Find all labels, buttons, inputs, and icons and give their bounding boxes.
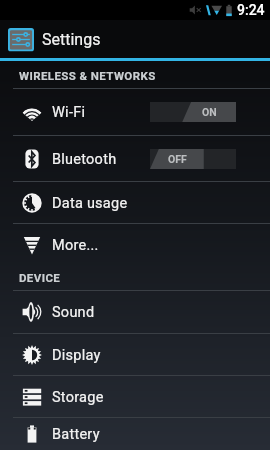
staticText: Bluetooth [52,151,117,168]
button[interactable]: Switch on [150,102,236,122]
button[interactable]: Sound [0,291,270,333]
staticText: Settings [42,30,101,49]
staticText: OFF [168,153,187,165]
staticText: Display [52,347,101,364]
button[interactable]: Display [0,334,270,375]
staticText: Data usage [52,195,128,212]
button[interactable]: Bluetooth [0,136,270,181]
button[interactable]: Wi-Fi [0,89,270,135]
staticText: Wi-Fi [52,104,86,121]
staticText: DEVICE [19,271,61,284]
button[interactable]: Data usage [0,182,270,223]
staticText: Storage [52,389,104,406]
staticText: More... [52,237,99,254]
staticText: ON [202,106,217,118]
button[interactable]: Storage [0,376,270,417]
staticText: WIRELESS & NETWORKS [19,69,156,82]
staticText: Sound [52,304,95,321]
staticText: 9:24 [237,2,265,18]
button[interactable]: Settings [0,20,270,58]
button[interactable]: More... [0,224,270,265]
button[interactable]: Switch off [150,149,236,169]
staticText: Battery [52,426,100,443]
button[interactable]: Battery [0,418,270,450]
